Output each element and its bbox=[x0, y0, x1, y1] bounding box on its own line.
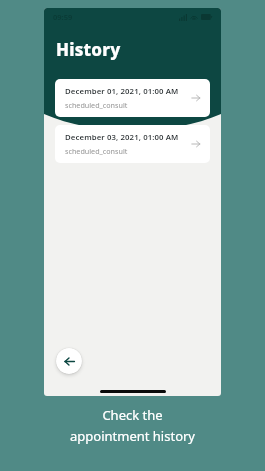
staticText: 09:59 bbox=[53, 12, 73, 22]
button[interactable]: December 01, 2021, 01:00 AM bbox=[55, 79, 210, 117]
staticText: History bbox=[56, 38, 121, 61]
staticText: December 01, 2021, 01:00 AM bbox=[65, 86, 179, 97]
button[interactable]: Back bbox=[56, 348, 82, 374]
staticText: scheduled_consult bbox=[65, 100, 128, 110]
staticText: Check the bbox=[102, 406, 163, 424]
staticText: appointment history bbox=[70, 427, 195, 445]
staticText: scheduled_consult bbox=[65, 146, 128, 156]
staticText: December 03, 2021, 01:00 AM bbox=[65, 132, 179, 143]
button[interactable]: December 03, 2021, 01:00 AM bbox=[55, 125, 210, 163]
